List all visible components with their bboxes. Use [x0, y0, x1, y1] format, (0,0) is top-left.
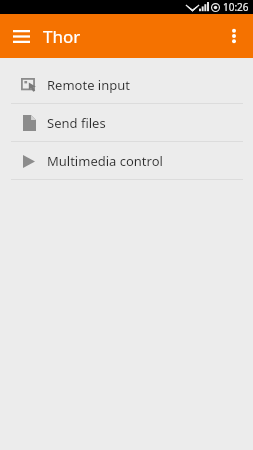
staticText: Thor	[43, 25, 81, 48]
button[interactable]: Send files	[0, 104, 253, 141]
button[interactable]: More options	[217, 19, 251, 53]
staticText: 10:26	[223, 0, 249, 14]
button[interactable]: Open navigation drawer	[4, 19, 38, 53]
staticText: Remote input	[47, 76, 130, 94]
staticText: Multimedia control	[47, 152, 163, 170]
button[interactable]: Multimedia control	[0, 142, 253, 179]
staticText: Send files	[47, 114, 106, 132]
button[interactable]: Remote input	[0, 66, 253, 103]
